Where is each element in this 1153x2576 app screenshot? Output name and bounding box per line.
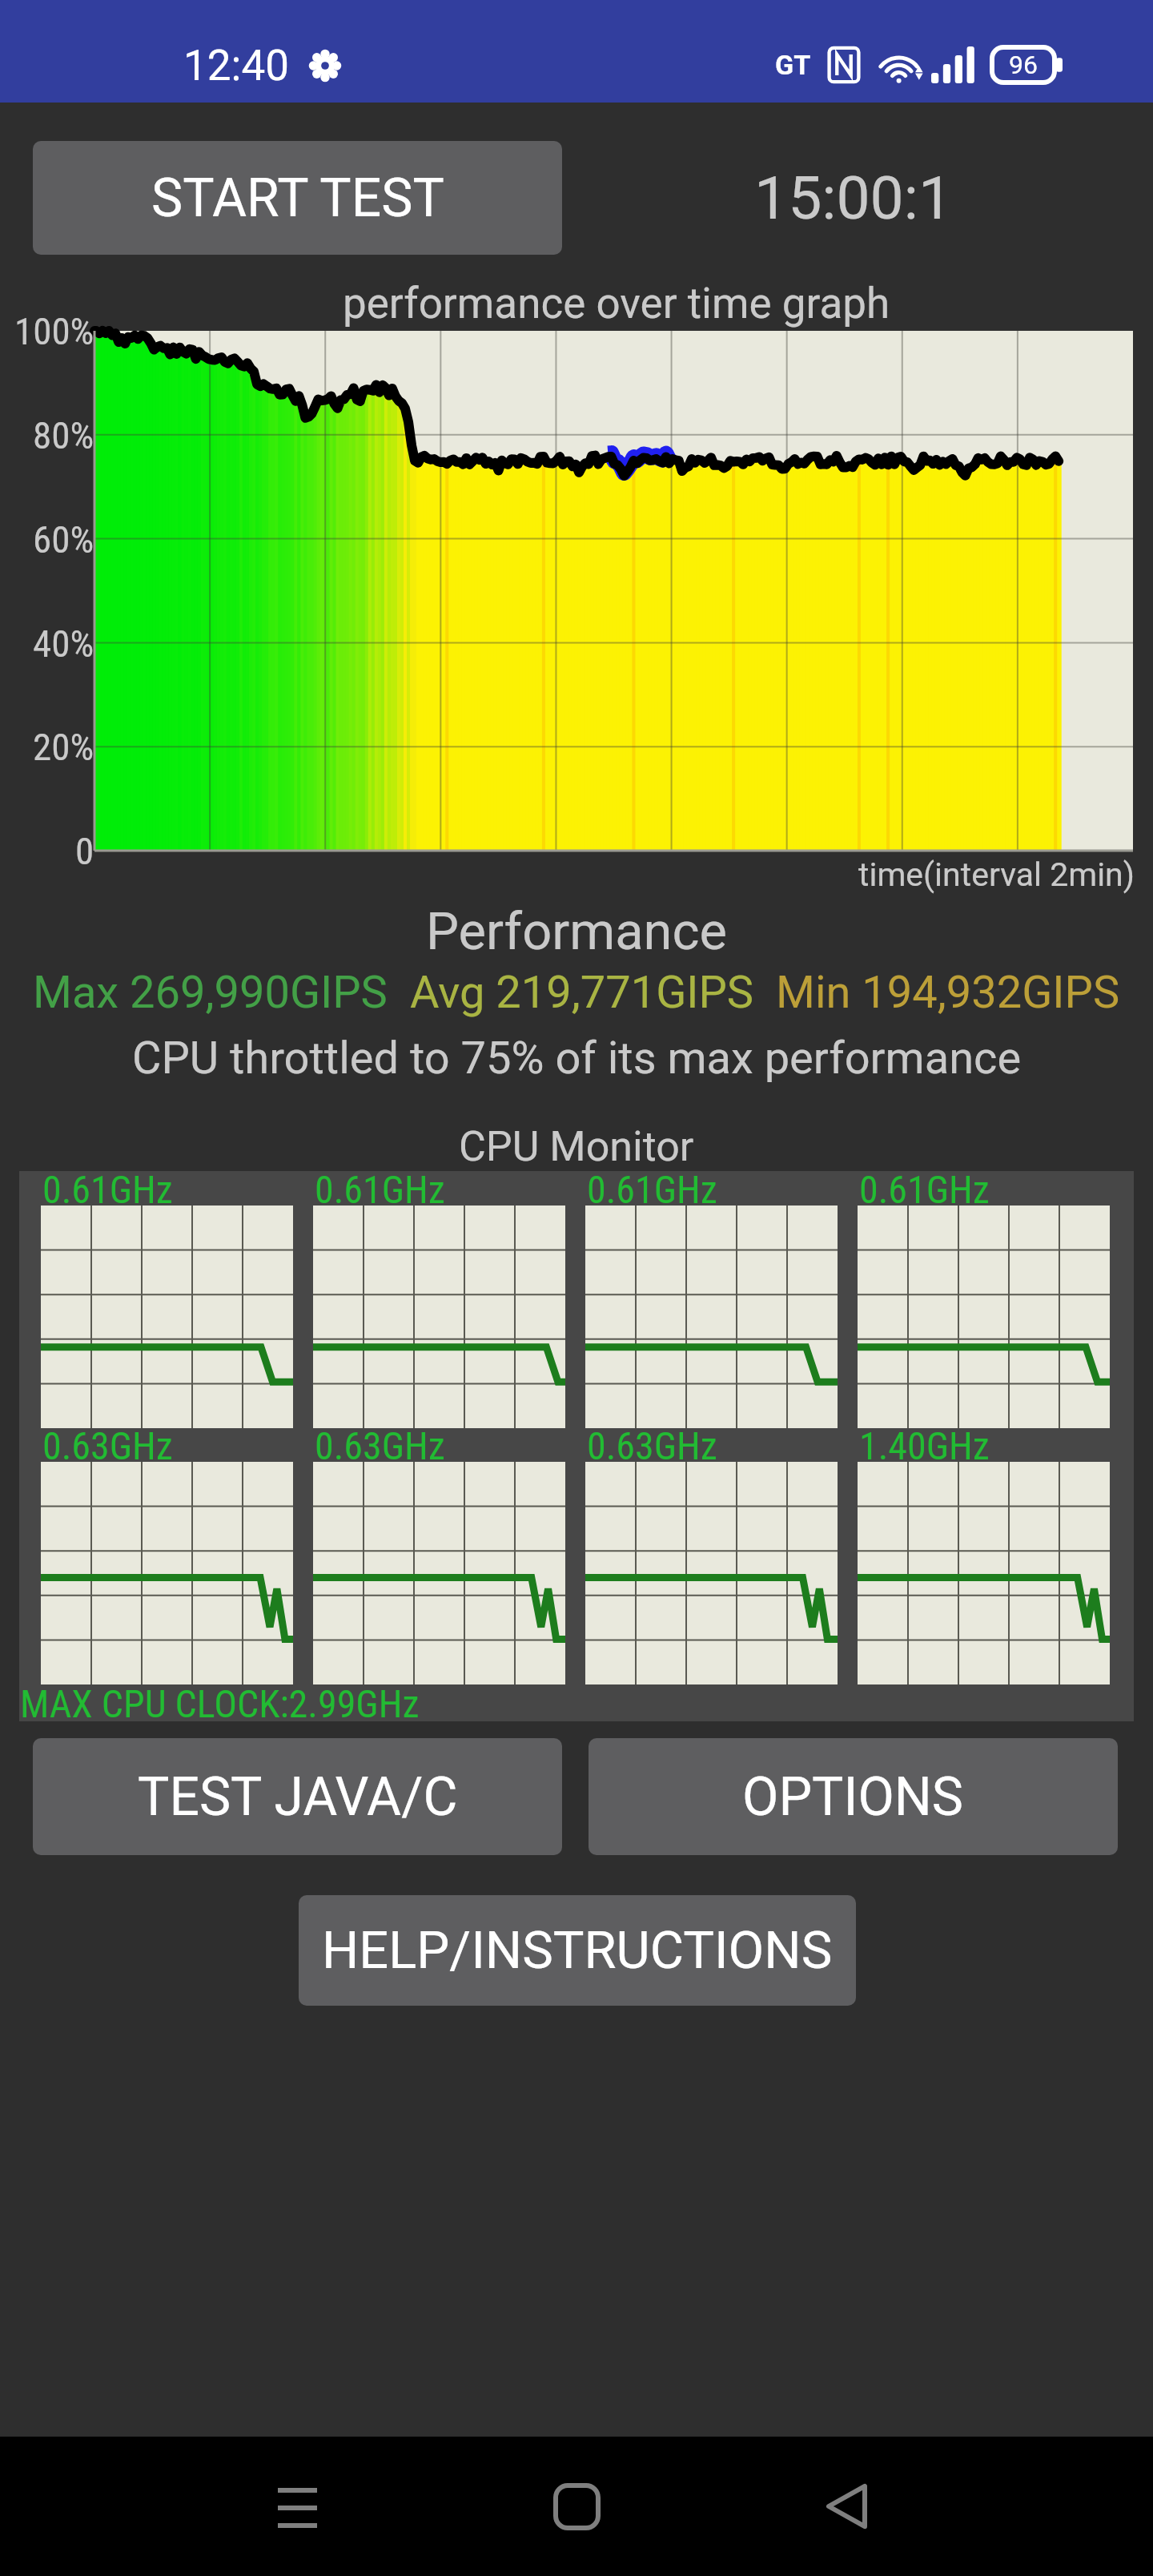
button[interactable]: Recents — [253, 2462, 341, 2550]
staticText: Performance — [426, 901, 728, 962]
staticText: 0.61GHz — [42, 1167, 173, 1212]
button[interactable]: TEST JAVA/C — [33, 1738, 562, 1855]
staticText: CPU Monitor — [459, 1122, 694, 1171]
staticText: 0 — [75, 829, 94, 873]
staticText: 100% — [14, 309, 94, 353]
staticText: CPU throttled to 75% of its max performa… — [132, 1032, 1022, 1085]
staticText: 0.63GHz — [315, 1423, 445, 1468]
button[interactable]: HELP/INSTRUCTIONS — [299, 1895, 856, 2006]
staticText: OPTIONS — [742, 1766, 964, 1828]
staticText: Max 269,990GIPS — [33, 966, 410, 1019]
staticText: 1.40GHz — [859, 1423, 990, 1468]
staticText: 0.63GHz — [42, 1423, 173, 1468]
staticText: GT — [775, 49, 811, 81]
staticText: time(interval 2min) — [858, 855, 1135, 894]
button[interactable]: START TEST — [33, 141, 562, 255]
staticText: TEST JAVA/C — [138, 1766, 458, 1828]
staticText: START TEST — [151, 167, 444, 229]
staticText: 40% — [33, 622, 94, 666]
staticText: 20% — [33, 725, 94, 769]
staticText: 0.61GHz — [587, 1167, 717, 1212]
button[interactable]: Home — [532, 2462, 621, 2550]
staticText: 0.61GHz — [859, 1167, 990, 1212]
staticText: Min 194,932GIPS — [776, 966, 1120, 1019]
staticText: HELP/INSTRUCTIONS — [322, 1920, 833, 1981]
staticText: 96 — [1009, 50, 1038, 80]
staticText: 80% — [33, 413, 94, 457]
staticText: 12:40 — [183, 41, 289, 91]
staticText: 15:00:1 — [754, 163, 953, 233]
staticText: performance over time graph — [343, 279, 890, 328]
button[interactable]: Back — [803, 2462, 891, 2550]
staticText: MAX CPU CLOCK:2.99GHz — [20, 1681, 420, 1726]
button[interactable]: OPTIONS — [589, 1738, 1118, 1855]
staticText: 60% — [33, 517, 94, 561]
staticText: 0.61GHz — [315, 1167, 445, 1212]
staticText: 0.63GHz — [587, 1423, 717, 1468]
staticText: Avg 219,771GIPS — [410, 966, 776, 1019]
